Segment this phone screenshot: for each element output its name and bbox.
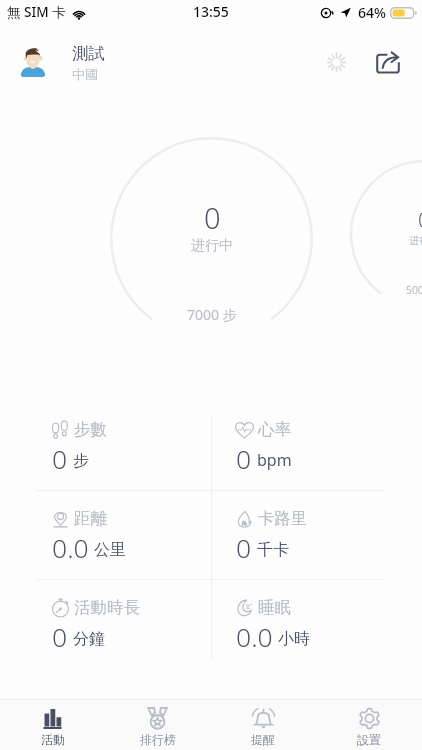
staticText: 0 bbox=[418, 205, 422, 234]
staticText: 64% bbox=[358, 3, 386, 22]
staticText: 0 bbox=[236, 441, 252, 477]
button[interactable]: 活動 bbox=[0, 700, 105, 750]
staticText: 活動 bbox=[41, 732, 65, 747]
staticText: 小時 bbox=[278, 629, 310, 649]
staticText: 0 bbox=[204, 198, 221, 237]
staticText: 13:55 bbox=[193, 2, 229, 21]
staticText: 0.0 bbox=[52, 530, 89, 566]
button[interactable]: 心率 bbox=[235, 419, 405, 494]
staticText: 分鐘 bbox=[73, 629, 105, 649]
button[interactable]: 卡路里 bbox=[235, 508, 405, 583]
button[interactable]: 睡眠 bbox=[235, 597, 405, 672]
staticText: 卡路里 bbox=[258, 508, 308, 529]
staticText: 提醒 bbox=[251, 732, 275, 747]
button[interactable]: 距離 bbox=[51, 508, 221, 583]
staticText: 測試 bbox=[72, 43, 105, 64]
button[interactable]: 活動時長 bbox=[51, 597, 221, 672]
button[interactable]: 提醒 bbox=[210, 700, 316, 750]
staticText: 公里 bbox=[94, 540, 126, 560]
staticText: 步數 bbox=[74, 419, 107, 440]
button[interactable]: Syncing bbox=[318, 44, 354, 80]
staticText: 無 SIM 卡 bbox=[7, 3, 66, 21]
staticText: 中國 bbox=[72, 66, 98, 82]
staticText: 5000 步 bbox=[406, 283, 422, 297]
button[interactable]: Share bbox=[371, 46, 405, 80]
button[interactable]: 步數 bbox=[51, 419, 221, 494]
staticText: bpm bbox=[257, 449, 292, 471]
staticText: 設置 bbox=[357, 732, 381, 747]
button[interactable]: 設置 bbox=[316, 700, 422, 750]
staticText: 步 bbox=[73, 451, 89, 471]
staticText: 0 bbox=[52, 619, 68, 655]
staticText: 睡眠 bbox=[258, 597, 291, 618]
staticText: 心率 bbox=[258, 419, 291, 440]
staticText: 7000 步 bbox=[187, 305, 237, 324]
button[interactable]: 排行榜 bbox=[105, 700, 210, 750]
staticText: 排行榜 bbox=[140, 732, 176, 747]
staticText: 0 bbox=[52, 441, 68, 477]
staticText: 进行中 bbox=[191, 237, 233, 255]
staticText: 进行中 bbox=[409, 234, 422, 247]
staticText: 距離 bbox=[74, 508, 107, 529]
staticText: 千卡 bbox=[257, 540, 289, 560]
staticText: 活動時長 bbox=[74, 597, 140, 618]
staticText: 0 bbox=[236, 530, 252, 566]
staticText: 0.0 bbox=[236, 619, 273, 655]
